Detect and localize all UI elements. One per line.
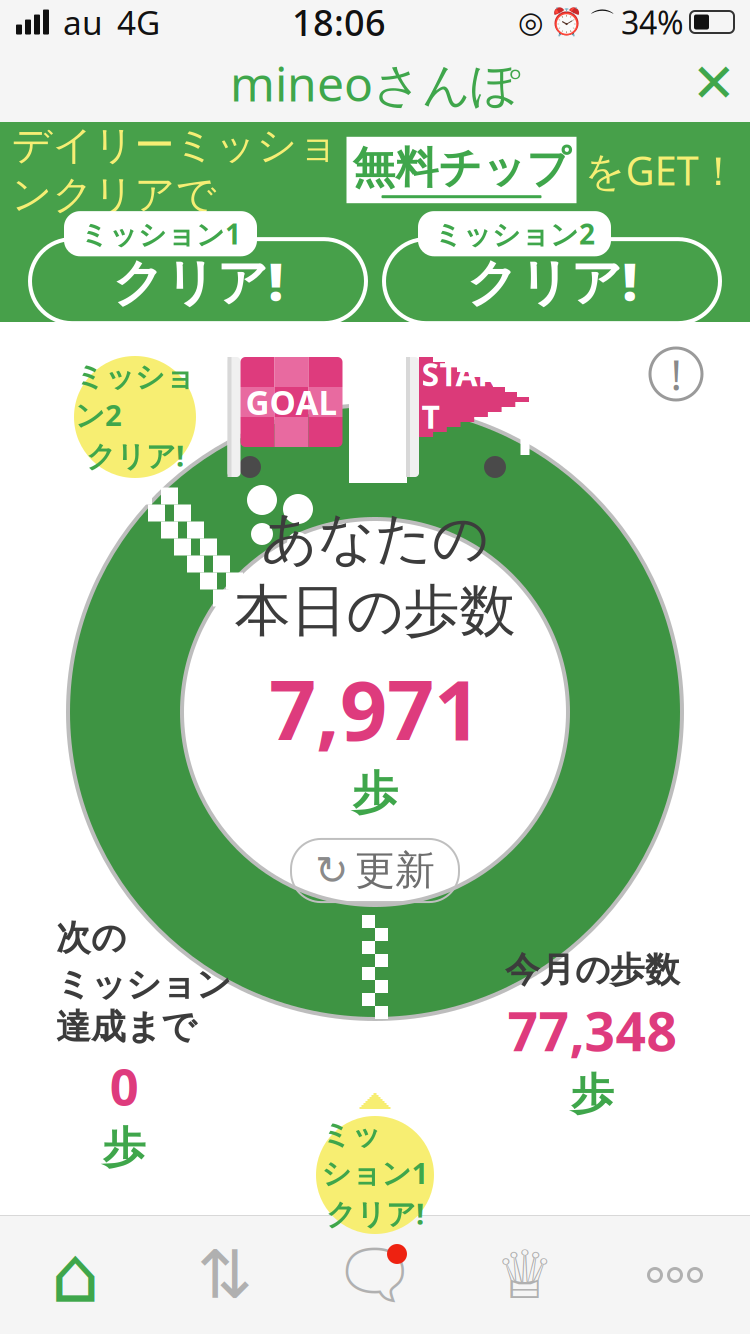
staticText: クリア! (466, 247, 637, 315)
staticText: ↻ (315, 848, 349, 893)
button[interactable]: データ (150, 1225, 300, 1325)
staticText: 歩 (352, 765, 397, 821)
staticText: GOAL (245, 380, 337, 424)
staticText: ⌒ (589, 6, 616, 38)
staticText: au (63, 0, 103, 44)
staticText: 7,971 (269, 653, 481, 763)
button[interactable]: ランキング (450, 1225, 600, 1325)
button[interactable]: 情報 (640, 338, 712, 410)
staticText: ミッション1 (80, 215, 241, 252)
staticText: 次の (56, 917, 126, 959)
staticText: クリア! (326, 1194, 424, 1233)
staticText: 歩 (103, 1122, 146, 1174)
button[interactable]: クリア! (384, 225, 720, 337)
button[interactable]: ↻ (291, 839, 459, 902)
staticText: ミッション2 (434, 215, 595, 252)
staticText: ミッション達成まで (56, 963, 231, 1048)
staticText: ♕ (495, 1237, 555, 1313)
button[interactable]: チャット (300, 1225, 450, 1325)
staticText: 無料チップ (352, 142, 570, 194)
staticText: 歩 (571, 1068, 614, 1120)
staticText: ! (670, 346, 681, 402)
staticText: クリア! (86, 436, 184, 475)
staticText: ミッション1 (321, 1117, 428, 1192)
staticText: 今月の歩数 (505, 949, 680, 991)
staticText: 34% (621, 1, 684, 43)
button[interactable]: その他 (600, 1225, 750, 1325)
staticText: ◎ (518, 5, 544, 39)
staticText: ✕ (691, 53, 736, 113)
staticText: 4G (117, 0, 160, 44)
button[interactable]: ホーム (0, 1225, 150, 1325)
button[interactable]: 閉じる (678, 47, 750, 119)
staticText: 🗨 (332, 1237, 417, 1313)
button[interactable]: 無料チップ (346, 137, 576, 203)
staticText: あなたの (261, 504, 489, 573)
staticText: 0 (110, 1052, 139, 1120)
staticText: ⇅ (197, 1237, 253, 1313)
staticText: 本日の歩数 (234, 577, 515, 645)
staticText: START (421, 352, 508, 437)
staticText: ⏰ (550, 7, 583, 37)
staticText: 18:06 (292, 0, 386, 46)
staticText: 77,348 (507, 995, 677, 1066)
staticText: をGET！ (584, 143, 738, 196)
staticText: クリア! (112, 247, 283, 315)
staticText: 更新 (355, 846, 435, 895)
staticText: ミッション2 (75, 359, 195, 434)
staticText: ⌂ (50, 1231, 99, 1319)
button[interactable]: クリア! (30, 225, 366, 337)
staticText: mineoさんぽ (230, 51, 520, 115)
staticText: デイリーミッションクリアで (11, 121, 338, 219)
